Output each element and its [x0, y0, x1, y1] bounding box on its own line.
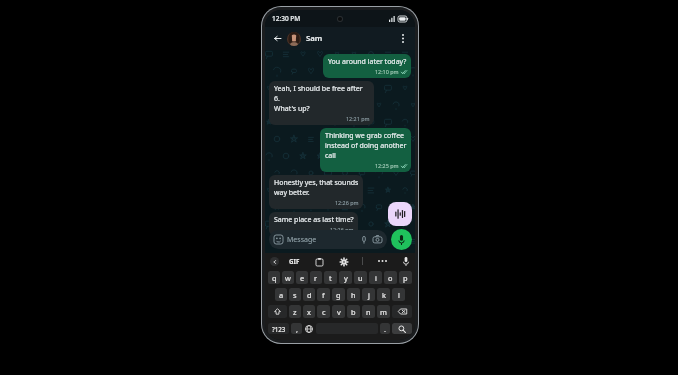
- button[interactable]: Message: [269, 230, 387, 249]
- staticText: h: [351, 290, 356, 300]
- staticText: Yeah, I should be free after 6. What's u…: [274, 84, 370, 114]
- button[interactable]: Search: [392, 323, 412, 334]
- staticText: c: [322, 307, 326, 317]
- button[interactable]: Backspace: [392, 305, 412, 318]
- button[interactable]: Voice input: [401, 257, 410, 266]
- button[interactable]: f: [317, 288, 330, 301]
- button[interactable]: n: [362, 305, 375, 318]
- staticText: ,: [296, 324, 298, 334]
- button[interactable]: Symbols: [268, 323, 289, 334]
- staticText: m: [380, 307, 387, 317]
- staticText: p: [403, 273, 408, 283]
- button[interactable]: t: [324, 271, 337, 284]
- button[interactable]: x: [303, 305, 315, 318]
- staticText: u: [358, 273, 363, 283]
- button[interactable]: o: [384, 271, 397, 284]
- staticText: w: [285, 273, 291, 283]
- button[interactable]: i: [369, 271, 382, 284]
- other: Camera: [373, 235, 382, 244]
- staticText: 12:30 PM: [272, 14, 301, 23]
- staticText: f: [322, 290, 325, 300]
- button[interactable]: s: [289, 288, 301, 301]
- button[interactable]: v: [332, 305, 345, 318]
- button[interactable]: Back: [271, 32, 284, 45]
- button[interactable]: Shift: [268, 305, 287, 318]
- button[interactable]: k: [377, 288, 390, 301]
- button[interactable]: Clipboard: [315, 257, 324, 266]
- button[interactable]: ,: [291, 323, 302, 334]
- button[interactable]: w: [282, 271, 294, 284]
- staticText: .: [384, 324, 386, 334]
- staticText: a: [279, 290, 284, 300]
- staticText: Thinking we grab coffee instead of doing…: [325, 131, 407, 161]
- staticText: Same place as last time?: [274, 215, 354, 225]
- button[interactable]: You around later today?: [323, 54, 411, 78]
- staticText: t: [329, 273, 332, 283]
- staticText: o: [388, 273, 393, 283]
- button[interactable]: y: [339, 271, 352, 284]
- staticText: d: [307, 290, 312, 300]
- staticText: r: [314, 273, 318, 283]
- staticText: Message: [287, 235, 360, 245]
- button[interactable]: More: [377, 256, 387, 266]
- button[interactable]: GIF: [289, 257, 300, 265]
- button[interactable]: Honestly yes, that sounds way better.: [269, 175, 363, 209]
- staticText: n: [366, 307, 371, 317]
- staticText: z: [293, 307, 297, 317]
- staticText: v: [337, 307, 341, 317]
- button[interactable]: Yeah, I should be free after 6. What's u…: [269, 81, 374, 125]
- staticText: You around later today?: [328, 57, 407, 67]
- staticText: Sam: [306, 33, 323, 44]
- button[interactable]: Language: [304, 323, 314, 334]
- button[interactable]: u: [354, 271, 367, 284]
- button[interactable]: d: [303, 288, 315, 301]
- staticText: i: [375, 273, 377, 283]
- button[interactable]: c: [317, 305, 330, 318]
- button[interactable]: Settings: [339, 257, 348, 266]
- staticText: e: [300, 273, 305, 283]
- staticText: s: [293, 290, 297, 300]
- button[interactable]: b: [347, 305, 360, 318]
- staticText: 12:26 pm: [330, 226, 354, 233]
- staticText: GIF: [289, 257, 300, 265]
- button[interactable]: h: [347, 288, 360, 301]
- staticText: 12:26 pm: [335, 199, 359, 206]
- button[interactable]: Record voice message: [391, 229, 412, 250]
- button[interactable]: .: [380, 323, 390, 334]
- staticText: k: [382, 290, 386, 300]
- staticText: q: [272, 273, 277, 283]
- staticText: j: [368, 290, 370, 300]
- button[interactable]: g: [332, 288, 345, 301]
- staticText: 12:10 pm: [375, 68, 399, 75]
- button[interactable]: Profile photo: [287, 32, 301, 46]
- staticText: l: [398, 290, 400, 300]
- staticText: b: [351, 307, 356, 317]
- button[interactable]: j: [362, 288, 375, 301]
- button[interactable]: l: [392, 288, 405, 301]
- staticText: 12:21 pm: [346, 115, 370, 122]
- button[interactable]: z: [289, 305, 301, 318]
- button[interactable]: Voice transcript: [388, 202, 412, 226]
- button[interactable]: Sam: [306, 33, 396, 44]
- other: Attach: [360, 236, 368, 244]
- staticText: Honestly yes, that sounds way better.: [274, 178, 359, 198]
- button[interactable]: p: [399, 271, 412, 284]
- staticText: g: [336, 290, 341, 300]
- button[interactable]: Thinking we grab coffee instead of doing…: [320, 128, 411, 172]
- button[interactable]: Same place as last time?: [269, 212, 358, 236]
- staticText: y: [344, 273, 348, 283]
- button[interactable]: m: [377, 305, 390, 318]
- staticText: x: [307, 307, 311, 317]
- button[interactable]: r: [310, 271, 322, 284]
- button[interactable]: a: [275, 288, 287, 301]
- button[interactable]: q: [268, 271, 280, 284]
- button[interactable]: Collapse toolbar: [270, 257, 279, 266]
- button[interactable]: More options: [396, 32, 409, 45]
- button[interactable]: e: [296, 271, 308, 284]
- staticText: 12:25 pm: [375, 162, 399, 169]
- staticText: ?123: [272, 325, 286, 333]
